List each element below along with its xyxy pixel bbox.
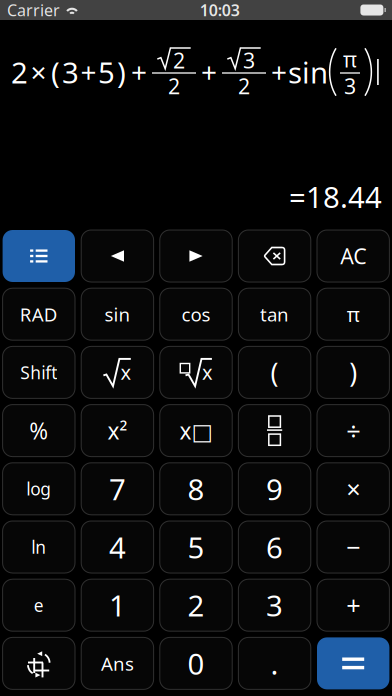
staticText: + [346, 588, 360, 622]
staticText: Shift [20, 361, 57, 384]
button[interactable]: 3 [238, 579, 311, 631]
staticText: 8 [187, 469, 204, 508]
button[interactable]: − [317, 521, 389, 573]
button[interactable]: ÷ [317, 405, 389, 457]
button[interactable]: % [3, 405, 75, 457]
staticText: 4 [109, 527, 126, 566]
button[interactable]: Equals [317, 637, 389, 689]
staticText: Carrier [7, 0, 60, 21]
staticText: % [29, 415, 48, 446]
staticText: − [346, 530, 360, 564]
staticText: x² [107, 415, 127, 446]
button[interactable]: 4 [81, 521, 154, 573]
staticText: ÷ [346, 414, 360, 447]
button[interactable]: 8 [160, 463, 232, 515]
staticText: Ans [101, 651, 134, 676]
button[interactable]: 9 [238, 463, 311, 515]
button[interactable]: 5 [160, 521, 232, 573]
button[interactable]: x² [81, 405, 154, 457]
staticText: sin [104, 302, 130, 327]
staticText: ) [117, 52, 126, 91]
button[interactable]: 7 [81, 463, 154, 515]
staticText: 10:03 [200, 0, 240, 21]
staticText: 3 [266, 586, 283, 625]
staticText: 5 [187, 527, 204, 566]
button[interactable]: Fraction [238, 405, 311, 457]
staticText: + [271, 53, 287, 91]
button[interactable]: . [238, 637, 311, 689]
staticText: × [30, 53, 46, 91]
staticText: 7 [109, 469, 126, 508]
staticText: × [346, 472, 360, 506]
staticText: sin [288, 52, 328, 91]
staticText: + [131, 53, 147, 91]
button[interactable]: + [317, 579, 389, 631]
staticText: =18.44 [289, 177, 382, 216]
staticText: AC [340, 242, 366, 270]
staticText: 6 [266, 527, 283, 566]
button[interactable]: RAD [3, 288, 75, 340]
staticText: 2 [168, 72, 180, 100]
staticText: 3 [243, 46, 255, 74]
staticText: cos [181, 302, 210, 327]
button[interactable]: ) [317, 346, 389, 398]
staticText: ) [349, 355, 357, 390]
button[interactable]: sin [81, 288, 154, 340]
button[interactable]: Move left [81, 230, 154, 282]
button[interactable]: Nth root [160, 346, 232, 398]
staticText: 0 [187, 644, 204, 683]
button[interactable]: Shift [3, 346, 75, 398]
button[interactable]: Delete [238, 230, 311, 282]
staticText: tan [260, 302, 289, 327]
button[interactable]: AC [317, 230, 389, 282]
button[interactable]: × [317, 463, 389, 515]
staticText: 3 [344, 72, 356, 100]
button[interactable]: log [3, 463, 75, 515]
button[interactable]: 2 [160, 579, 232, 631]
staticText: + [80, 53, 96, 91]
button[interactable]: ( [238, 346, 311, 398]
staticText: 1 [109, 586, 126, 625]
staticText: 9 [266, 469, 283, 508]
staticText: ( [51, 52, 60, 91]
staticText: x [202, 359, 213, 385]
staticText: 2 [187, 586, 204, 625]
staticText: 2 [173, 46, 185, 74]
staticText: π [343, 45, 357, 73]
staticText: + [201, 53, 217, 91]
staticText: 3 [62, 52, 79, 91]
staticText: x□ [179, 415, 212, 446]
staticText: 2 [11, 52, 28, 91]
staticText: e [34, 594, 44, 617]
button[interactable]: π [317, 288, 389, 340]
button[interactable]: 1 [81, 579, 154, 631]
button[interactable]: Ans [81, 637, 154, 689]
button[interactable]: History [3, 230, 75, 282]
staticText: 5 [98, 52, 115, 91]
button[interactable]: tan [238, 288, 311, 340]
staticText: . [271, 644, 279, 683]
staticText: π [347, 301, 360, 327]
staticText: x [120, 359, 131, 385]
button[interactable]: cos [160, 288, 232, 340]
button[interactable]: e [3, 579, 75, 631]
staticText: RAD [20, 302, 58, 327]
staticText: ln [31, 535, 46, 558]
staticText: log [26, 477, 51, 500]
staticText: ( [271, 355, 279, 390]
button[interactable]: ln [3, 521, 75, 573]
button[interactable]: Move right [160, 230, 232, 282]
staticText: 2 [238, 72, 250, 100]
button[interactable]: 6 [238, 521, 311, 573]
button[interactable]: x□ [160, 405, 232, 457]
button[interactable]: 0 [160, 637, 232, 689]
button[interactable]: Rotate [3, 637, 75, 689]
button[interactable]: Square root [81, 346, 154, 398]
